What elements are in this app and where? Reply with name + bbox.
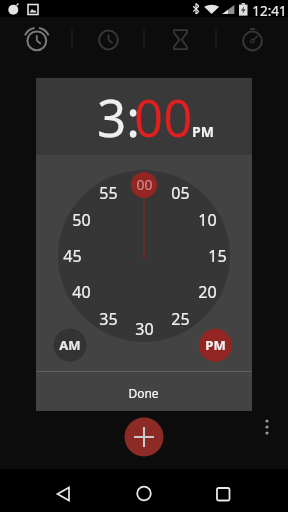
staticText: 45 <box>63 245 82 267</box>
staticText: 00 <box>134 82 193 151</box>
staticText: 30 <box>135 318 154 340</box>
staticText: Done <box>128 385 159 401</box>
staticText: 35 <box>99 308 118 330</box>
staticText: 55 <box>99 182 118 204</box>
staticText: 15 <box>208 245 227 267</box>
staticText: 50 <box>72 209 91 231</box>
staticText: 25 <box>171 308 190 330</box>
staticText: 3: <box>97 82 140 151</box>
staticText: 00 <box>136 175 153 194</box>
staticText: 12:41 <box>252 2 287 20</box>
staticText: PM <box>192 122 214 141</box>
staticText: PM <box>205 336 226 354</box>
staticText: 40 <box>72 281 91 303</box>
staticText: 10 <box>198 209 217 231</box>
staticText: 20 <box>198 281 217 303</box>
staticText: 05 <box>171 182 190 204</box>
staticText: AM <box>59 336 81 354</box>
